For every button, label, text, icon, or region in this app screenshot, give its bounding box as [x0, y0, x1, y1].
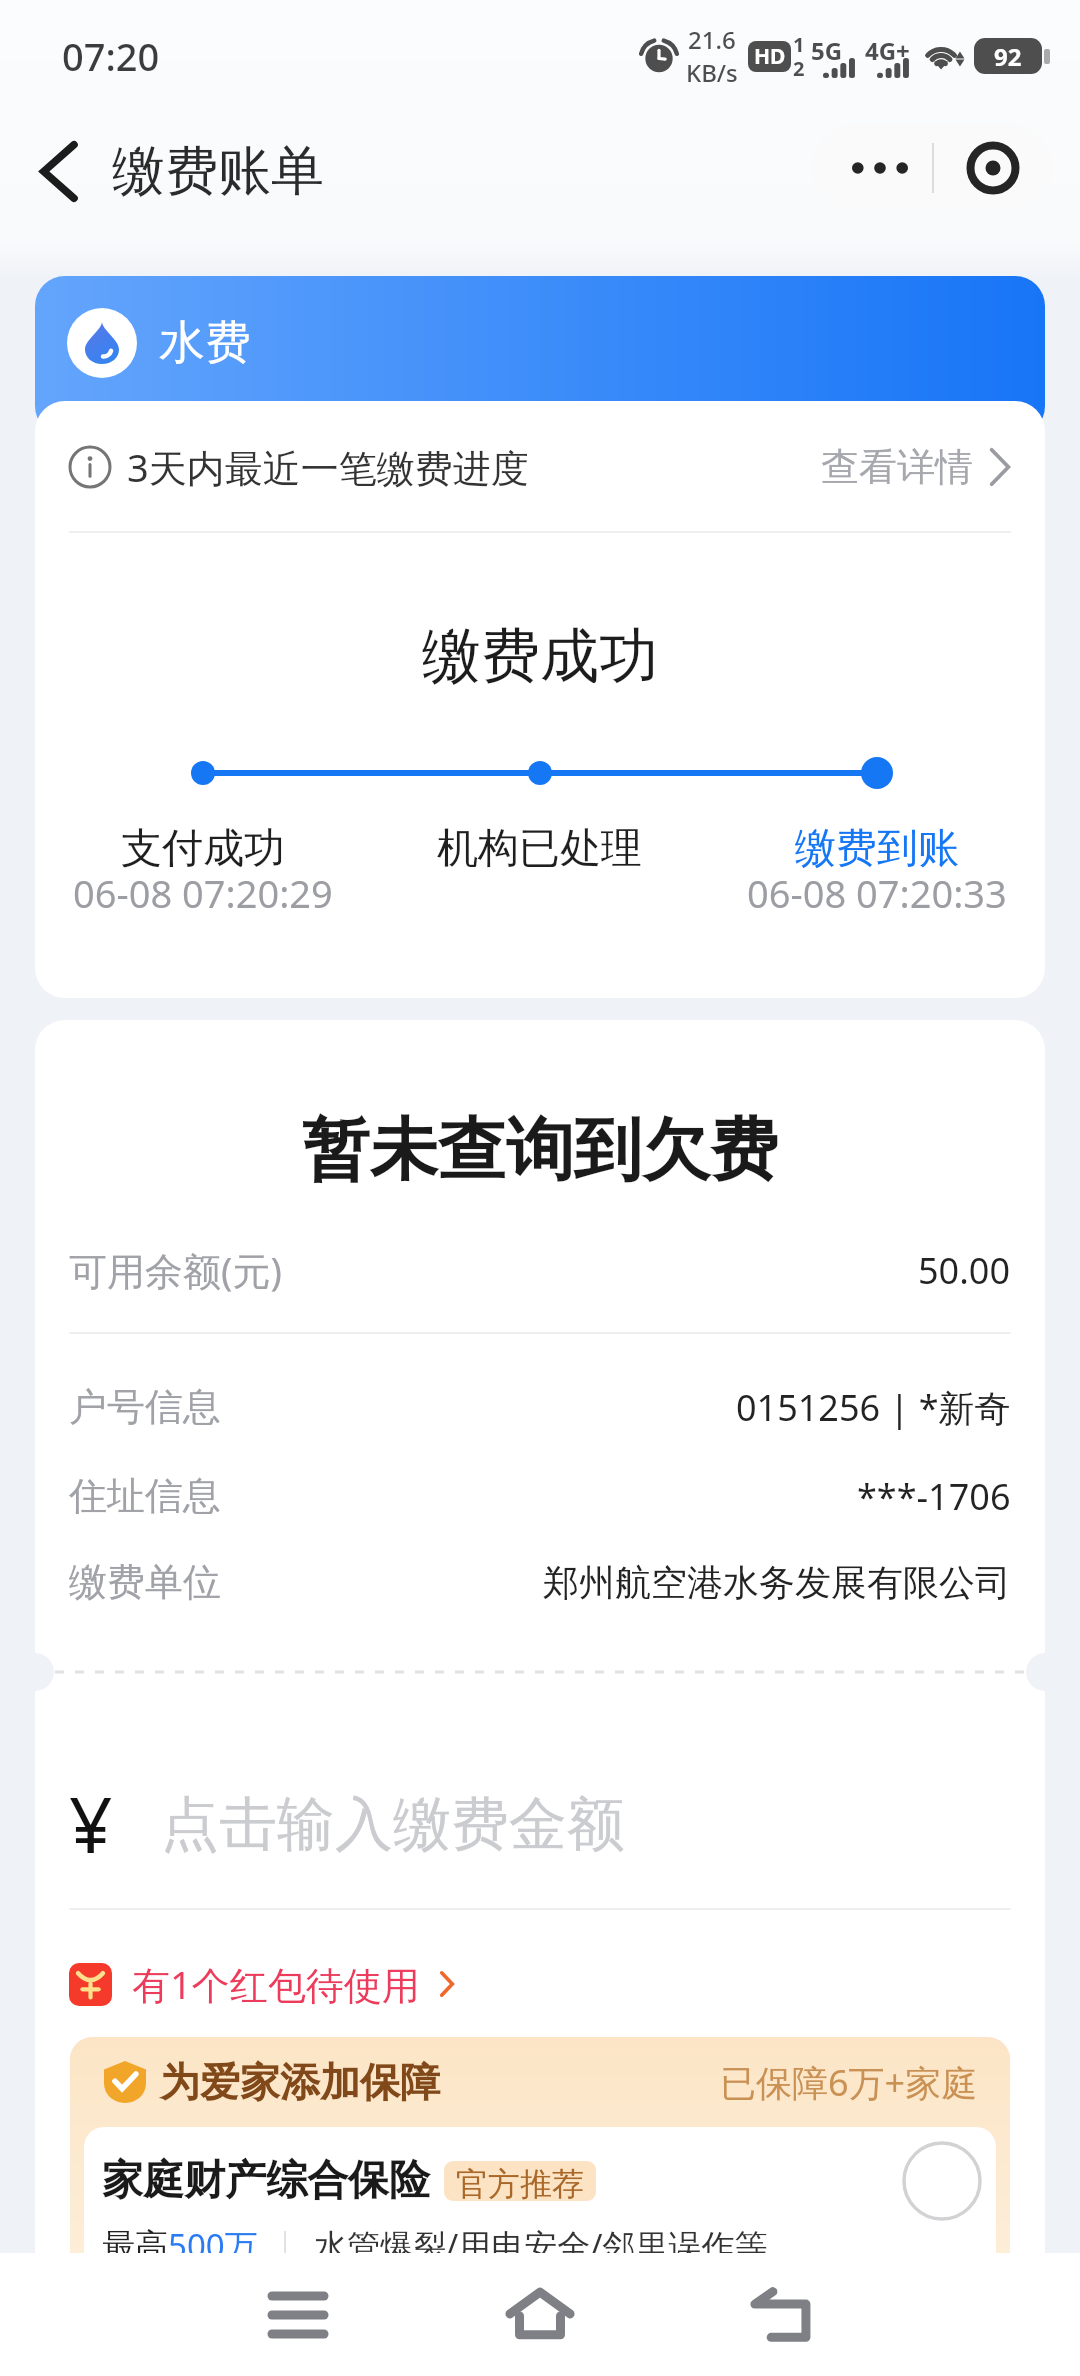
button[interactable]: Back [18, 131, 98, 211]
staticText: 1 [793, 31, 805, 58]
staticText: 已保障6万+家庭 [720, 2058, 978, 2107]
staticText: 水管爆裂/用电安全/邻里误作等 [314, 2223, 768, 2268]
button[interactable]: Recent apps [228, 2253, 368, 2376]
staticText: 5G [811, 34, 843, 67]
staticText: 4G+ [865, 34, 910, 67]
staticText: 家庭财产综合保险 [102, 2155, 430, 2207]
staticText: 07:20 [62, 30, 160, 82]
staticText: 06-08 07:20:29 [73, 867, 333, 919]
staticText: 点击输入缴费金额 [161, 1788, 625, 1861]
staticText: 暂未查询到欠费 [35, 1108, 1045, 1194]
staticText: HD [754, 42, 786, 71]
button[interactable]: ¥ [69, 1772, 1011, 1876]
button[interactable]: 为爱家添加保障 [70, 2037, 1010, 2358]
button[interactable]: 3天内最近一笔缴费进度 [69, 401, 1011, 532]
staticText: 有1个红包待使用 [132, 1958, 420, 2010]
staticText: 户号信息 [69, 1383, 221, 1431]
staticText: 缴费到账 [795, 823, 959, 875]
staticText: 0151256 | *新奇 [736, 1383, 1011, 1432]
staticText: 50.00 [918, 1246, 1011, 1295]
staticText: 为爱家添加保障 [160, 2057, 440, 2107]
staticText: 住址信息 [69, 1472, 221, 1520]
staticText: 3天内最近一笔缴费进度 [127, 441, 529, 493]
staticText: 06-08 07:20:33 [747, 867, 1007, 919]
button[interactable]: Home [470, 2253, 610, 2376]
button[interactable]: Close [934, 124, 1052, 211]
staticText: 机构已处理 [437, 823, 642, 875]
staticText: 官方推荐 [456, 2164, 584, 2201]
staticText: 缴费账单 [112, 138, 324, 205]
staticText: KB/s [686, 56, 738, 89]
staticText: 可用余额(元) [69, 1244, 282, 1296]
staticText: ***-1706 [857, 1472, 1011, 1521]
staticText: 92 [994, 40, 1022, 73]
staticText: 最高 [102, 2225, 168, 2267]
button[interactable]: Back [711, 2253, 851, 2376]
staticText: ¥ [69, 1772, 113, 1876]
staticText: 缴费单位 [69, 1558, 221, 1606]
button[interactable]: More options [828, 124, 932, 211]
staticText: 查看详情 [821, 443, 973, 491]
staticText: 500万 [168, 2223, 258, 2268]
staticText: 水费 [159, 314, 251, 372]
staticText: 2 [793, 55, 805, 82]
staticText: 支付成功 [121, 823, 285, 875]
button[interactable]: 有1个红包待使用 [69, 1956, 454, 2012]
staticText: 郑州航空港水务发展有限公司 [543, 1560, 1011, 1605]
staticText: 21.6 [688, 23, 736, 56]
staticText: 缴费成功 [35, 619, 1045, 693]
